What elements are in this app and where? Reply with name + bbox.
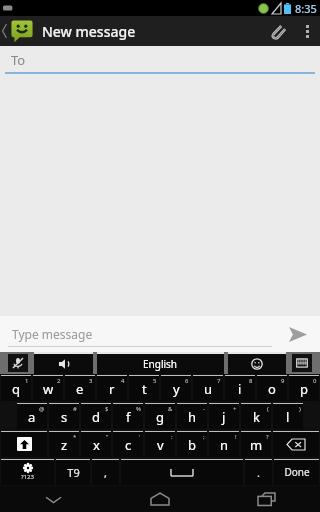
button[interactable]: a — [17, 403, 47, 429]
staticText: 1 — [25, 377, 29, 385]
button[interactable]: Home — [106, 486, 213, 512]
staticText: d — [92, 408, 100, 426]
staticText: k — [253, 408, 260, 426]
button[interactable]: n — [209, 431, 239, 457]
staticText: # — [73, 405, 77, 413]
staticText: . — [257, 465, 260, 480]
staticText: " — [106, 433, 109, 441]
button[interactable]: , — [92, 459, 119, 485]
staticText: 7 — [217, 377, 221, 385]
staticText: f — [126, 408, 131, 426]
staticText: n — [220, 436, 229, 454]
button[interactable]: Done — [274, 459, 319, 485]
button[interactable]: . — [245, 459, 272, 485]
button[interactable]: r — [97, 375, 127, 401]
staticText: 4 — [121, 377, 125, 385]
staticText: v — [157, 436, 164, 454]
staticText: y — [173, 380, 180, 398]
staticText: x — [93, 436, 100, 454]
button[interactable]: Emoji — [228, 352, 286, 374]
staticText: m — [250, 436, 263, 454]
staticText: 5 — [153, 377, 157, 385]
button[interactable]: h — [177, 403, 207, 429]
button[interactable]: g — [145, 403, 175, 429]
staticText: ! — [235, 433, 237, 441]
staticText: % — [136, 405, 141, 413]
staticText: l — [286, 408, 290, 426]
button[interactable] — [0, 19, 34, 43]
staticText: Type message — [12, 326, 93, 342]
staticText: To — [11, 51, 26, 69]
button[interactable]: x — [81, 431, 111, 457]
staticText: & — [168, 405, 173, 413]
staticText: r — [109, 380, 115, 398]
staticText: English — [143, 357, 178, 371]
button[interactable]: Backspace — [273, 431, 319, 457]
staticText: : — [171, 433, 173, 441]
button[interactable]: b — [177, 431, 207, 457]
staticText: b — [188, 436, 196, 454]
button[interactable]: p — [289, 375, 319, 401]
button[interactable]: i — [225, 375, 255, 401]
staticText: $ — [105, 405, 109, 413]
staticText: 8 — [249, 377, 253, 385]
button[interactable]: k — [241, 403, 271, 429]
staticText: q — [12, 380, 20, 398]
button[interactable]: z — [49, 431, 79, 457]
button[interactable]: s — [49, 403, 79, 429]
button[interactable]: Recent apps — [213, 486, 320, 512]
button[interactable]: Type message — [8, 321, 272, 347]
button[interactable]: m — [241, 431, 271, 457]
staticText: 2 — [57, 377, 61, 385]
button[interactable]: t — [129, 375, 159, 401]
staticText: o — [268, 380, 276, 398]
staticText: u — [204, 380, 213, 398]
staticText: - — [203, 405, 205, 413]
button[interactable]: Keyboard type — [34, 352, 93, 374]
staticText: * — [73, 433, 77, 441]
staticText: j — [222, 408, 226, 426]
staticText: 8:35 — [295, 1, 317, 16]
staticText: p — [300, 380, 308, 398]
button[interactable]: Hide keyboard — [0, 486, 106, 512]
staticText: 0 — [313, 377, 317, 385]
staticText: T9 — [67, 465, 80, 480]
staticText: ) — [299, 405, 301, 413]
staticText: w — [43, 380, 54, 398]
button[interactable]: w — [33, 375, 63, 401]
staticText: 6 — [185, 377, 189, 385]
button[interactable]: y — [161, 375, 191, 401]
button[interactable]: f — [113, 403, 143, 429]
staticText: i — [238, 380, 242, 398]
staticText: z — [61, 436, 68, 454]
staticText: ? — [266, 433, 269, 441]
staticText: 9 — [281, 377, 285, 385]
button[interactable]: j — [209, 403, 239, 429]
staticText: a — [28, 408, 36, 426]
button[interactable]: Attach — [260, 16, 294, 46]
staticText: h — [188, 408, 197, 426]
button[interactable]: l — [273, 403, 303, 429]
button[interactable]: e — [65, 375, 95, 401]
button[interactable]: d — [81, 403, 111, 429]
button[interactable]: Space — [121, 459, 243, 485]
button[interactable]: Shift — [1, 431, 47, 457]
button[interactable]: Hide keyboard — [292, 354, 312, 372]
staticText: ( — [267, 405, 269, 413]
staticText: New message — [42, 22, 136, 41]
button[interactable]: o — [257, 375, 287, 401]
button[interactable]: More options — [294, 16, 320, 46]
staticText: + — [233, 405, 237, 413]
button[interactable]: T9 — [56, 459, 90, 485]
button[interactable]: v — [145, 431, 175, 457]
button[interactable]: u — [193, 375, 223, 401]
staticText: Done — [284, 465, 310, 479]
button[interactable]: Language — [97, 352, 224, 374]
button[interactable]: q — [1, 375, 31, 401]
button[interactable]: Voice input — [8, 354, 28, 372]
staticText: 3 — [89, 377, 93, 385]
button[interactable]: Send — [276, 316, 320, 352]
button[interactable]: c — [113, 431, 143, 457]
button[interactable]: Symbols and settings — [1, 459, 54, 485]
staticText: , — [104, 465, 107, 480]
